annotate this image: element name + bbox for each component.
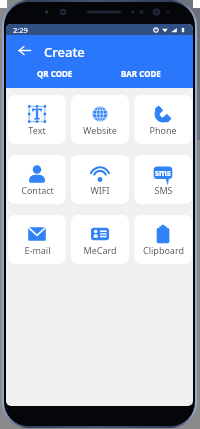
staticText: QR CODE [37, 68, 73, 79]
button[interactable]: WIFI [71, 155, 129, 204]
staticText: SMS [154, 184, 173, 196]
staticText: Create [44, 43, 85, 61]
staticText: BAR CODE [121, 68, 161, 79]
button[interactable]: Contact [8, 155, 66, 204]
button[interactable]: Text [8, 95, 66, 144]
button[interactable]: E-mail [8, 215, 66, 264]
button[interactable]: QR CODE [12, 66, 98, 88]
button[interactable]: BAR CODE [98, 66, 184, 88]
staticText: WIFI [90, 184, 110, 196]
staticText: E-mail [24, 244, 51, 256]
staticText: Phone [149, 124, 177, 136]
staticText: Text [28, 124, 46, 136]
button[interactable]: MeCard [71, 215, 129, 264]
button[interactable]: Clipboard [134, 215, 192, 264]
button[interactable]: Back [16, 42, 33, 59]
button[interactable]: Website [71, 95, 129, 144]
staticText: Contact [21, 184, 54, 196]
staticText: Website [83, 124, 117, 136]
staticText: 2:29 [13, 25, 28, 35]
button[interactable]: sms [134, 155, 192, 204]
staticText: Clipboard [143, 244, 184, 256]
staticText: MeCard [83, 244, 117, 256]
button[interactable]: Phone [134, 95, 192, 144]
staticText: sms [155, 167, 171, 178]
